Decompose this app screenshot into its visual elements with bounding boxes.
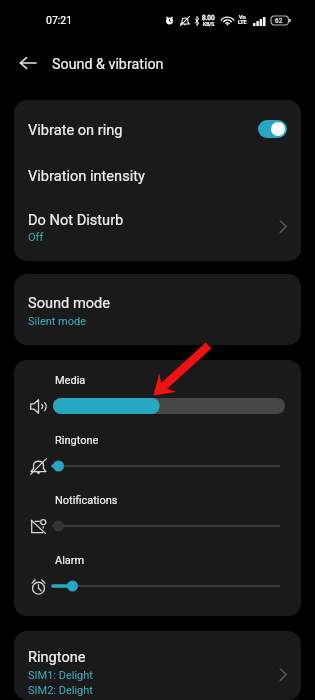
button[interactable]: Ringtone [14, 631, 301, 700]
staticText: Ringtone [28, 648, 86, 665]
staticText: Ringtone [55, 434, 99, 447]
staticText: Silent mode [28, 315, 87, 328]
button[interactable]: Vibration intensity [14, 152, 301, 197]
staticText: Sound & vibration [52, 56, 164, 73]
staticText: Sound mode [28, 294, 111, 311]
button[interactable]: Back [10, 45, 46, 81]
staticText: 62 [275, 17, 283, 25]
button[interactable]: Vibrate on ring [14, 100, 301, 152]
staticText: SIM2: Delight [28, 684, 93, 697]
staticText: Notifications [55, 494, 118, 507]
staticText: KB/S [203, 21, 215, 27]
staticText: LTE [238, 19, 247, 25]
staticText: Vo [239, 14, 246, 20]
staticText: 07:21 [46, 14, 73, 26]
staticText: Off [28, 231, 44, 244]
staticText: SIM1: Delight [28, 669, 93, 682]
button[interactable]: Sound mode [14, 274, 301, 345]
staticText: Alarm [55, 554, 85, 567]
staticText: Vibration intensity [28, 167, 145, 184]
staticText: Do Not Disturb [28, 211, 124, 228]
button[interactable]: Do Not Disturb [14, 197, 301, 261]
staticText: 8.00 [202, 14, 215, 22]
staticText: Media [55, 374, 86, 387]
staticText: Vibrate on ring [28, 121, 123, 138]
